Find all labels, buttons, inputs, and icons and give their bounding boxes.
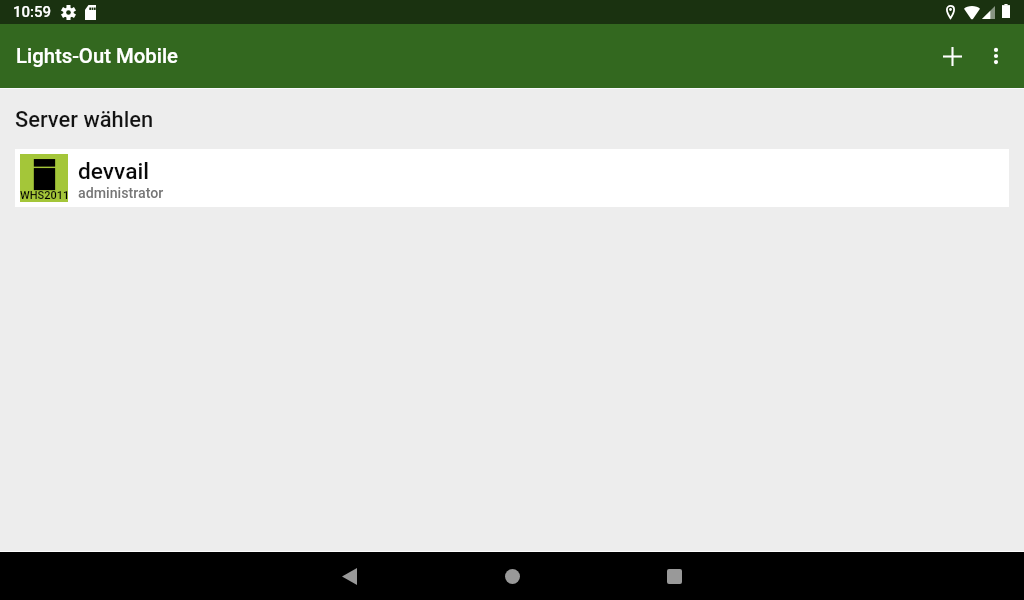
staticText: devvail [78,158,150,185]
button[interactable]: Recent apps [642,552,706,600]
staticText: Server wählen [15,107,154,133]
button[interactable]: More options [972,32,1020,80]
button[interactable]: Back [317,552,381,600]
button[interactable]: Home [480,552,544,600]
staticText: WHS2011 [20,189,68,202]
staticText: Lights-Out Mobile [16,44,179,68]
button[interactable]: WHS2011 [15,149,1009,207]
staticText: administrator [78,185,164,202]
staticText: 10:59 [13,3,52,21]
button[interactable]: Add server [928,32,976,80]
